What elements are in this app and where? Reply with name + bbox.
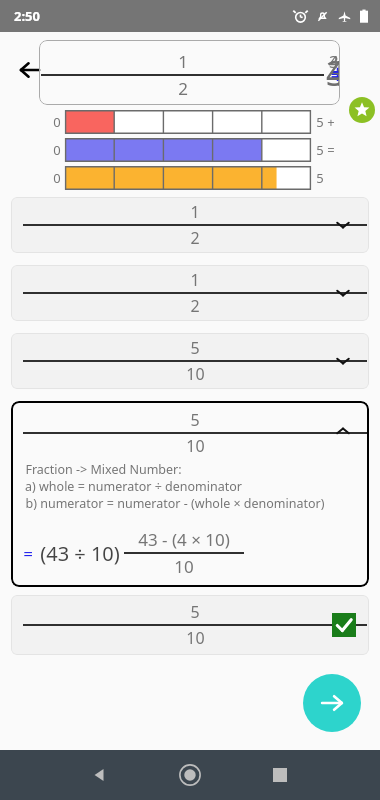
- staticText: 1: [190, 269, 200, 291]
- staticText: 5: [316, 169, 324, 187]
- staticText: 0: [53, 113, 61, 131]
- button[interactable]: Favorite: [349, 97, 375, 123]
- staticText: 1: [178, 50, 188, 73]
- button[interactable]: 1: [39, 40, 340, 105]
- staticText: 5: [190, 337, 200, 359]
- staticText: 5 +: [316, 113, 335, 131]
- staticText: 43 - (4 × 10): [138, 528, 230, 551]
- staticText: 10: [174, 555, 194, 578]
- button[interactable]: Recents: [260, 755, 300, 795]
- button[interactable]: Back: [8, 48, 52, 92]
- staticText: 0: [53, 169, 61, 187]
- staticText: 10: [186, 435, 205, 457]
- staticText: Fraction -> Mixed Number:: [25, 461, 182, 478]
- staticText: =: [23, 542, 33, 565]
- button[interactable]: Correct: [332, 613, 356, 637]
- button[interactable]: Next: [303, 674, 361, 732]
- staticText: 1: [190, 201, 200, 223]
- staticText: 5: [190, 601, 200, 623]
- staticText: (43 ÷ 10): [40, 540, 120, 567]
- staticText: 10: [186, 363, 205, 385]
- staticText: a) whole = numerator ÷ denominator: [25, 478, 242, 495]
- staticText: 0: [53, 141, 61, 159]
- button[interactable]: 5: [11, 333, 369, 389]
- staticText: 2: [178, 77, 188, 96]
- staticText: 10: [186, 627, 205, 649]
- staticText: 2:50: [14, 7, 40, 25]
- button[interactable]: 1: [11, 265, 369, 321]
- staticText: 5 =: [316, 141, 335, 159]
- button[interactable]: Home: [170, 755, 210, 795]
- button[interactable]: 5: [11, 595, 369, 655]
- staticText: 2: [190, 227, 200, 249]
- button[interactable]: Back: [80, 755, 120, 795]
- staticText: b) numerator = numerator - (whole × deno…: [25, 495, 325, 512]
- button[interactable]: 1: [11, 197, 369, 253]
- staticText: 2: [190, 295, 200, 317]
- button[interactable]: 5: [11, 401, 369, 587]
- staticText: 5: [190, 409, 200, 431]
